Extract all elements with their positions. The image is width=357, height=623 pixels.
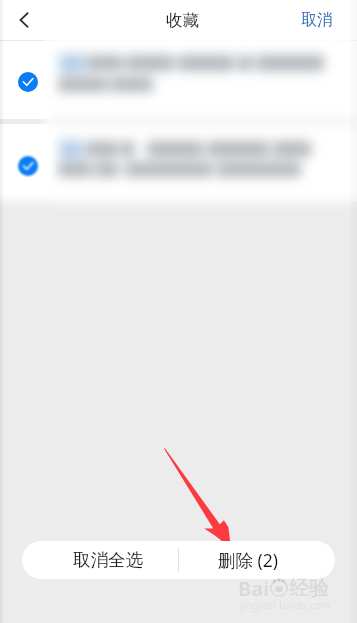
- staticText: 经验: [289, 576, 329, 601]
- button[interactable]: [0, 41, 357, 119]
- button[interactable]: 取消全选: [22, 541, 178, 579]
- button[interactable]: Back: [4, 0, 44, 40]
- staticText: jingyan.baidu.com: [240, 598, 331, 612]
- staticText: 收藏: [166, 10, 199, 31]
- button[interactable]: 取消: [285, 2, 357, 38]
- staticText: 取消全选: [73, 549, 143, 571]
- staticText: 删除 (2): [218, 548, 279, 572]
- button[interactable]: Selected: [18, 156, 38, 176]
- button[interactable]: 删除 (2): [179, 541, 335, 579]
- button[interactable]: [0, 124, 357, 201]
- button[interactable]: Selected: [18, 72, 38, 92]
- staticText: 取消: [301, 10, 333, 30]
- staticText: Bai: [238, 575, 270, 602]
